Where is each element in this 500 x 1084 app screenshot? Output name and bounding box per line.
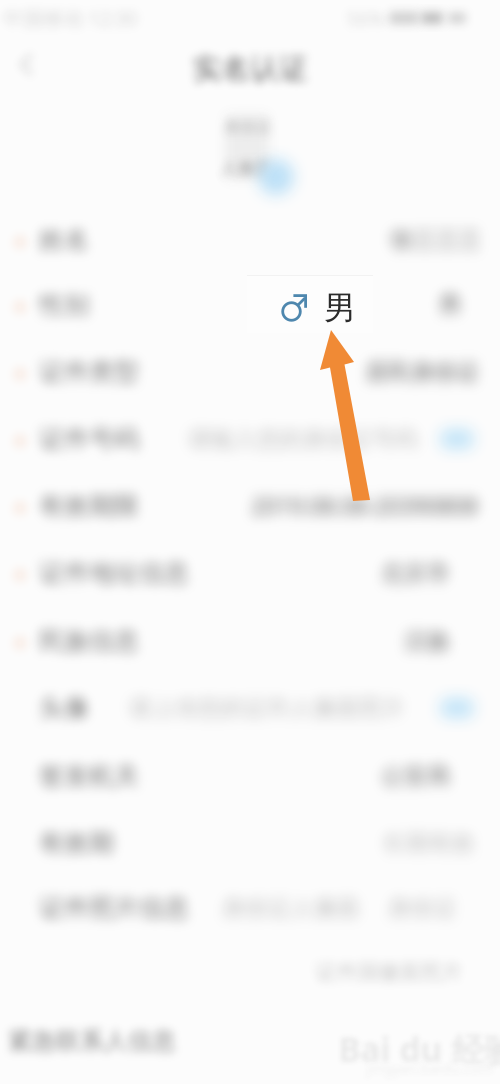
button[interactable]: 签发机关 [0,744,500,808]
button[interactable]: * [0,609,500,673]
button[interactable]: 头像 [0,676,500,740]
button[interactable]: 有效期 [0,811,500,875]
button[interactable]: * [0,407,500,471]
button[interactable]: * [0,340,500,404]
button[interactable]: * [0,541,500,605]
button[interactable]: 证件照片信息 [0,876,500,940]
button[interactable]: * [0,273,500,337]
button[interactable]: * [0,208,500,272]
button[interactable]: * [0,474,500,538]
staticText: 男 [324,288,356,328]
